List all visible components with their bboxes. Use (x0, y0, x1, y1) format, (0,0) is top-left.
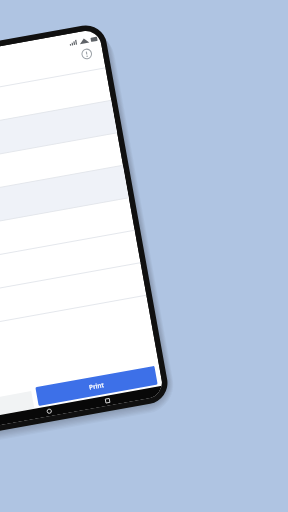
button[interactable]: Print preview on tilted phone (0, 0, 288, 512)
